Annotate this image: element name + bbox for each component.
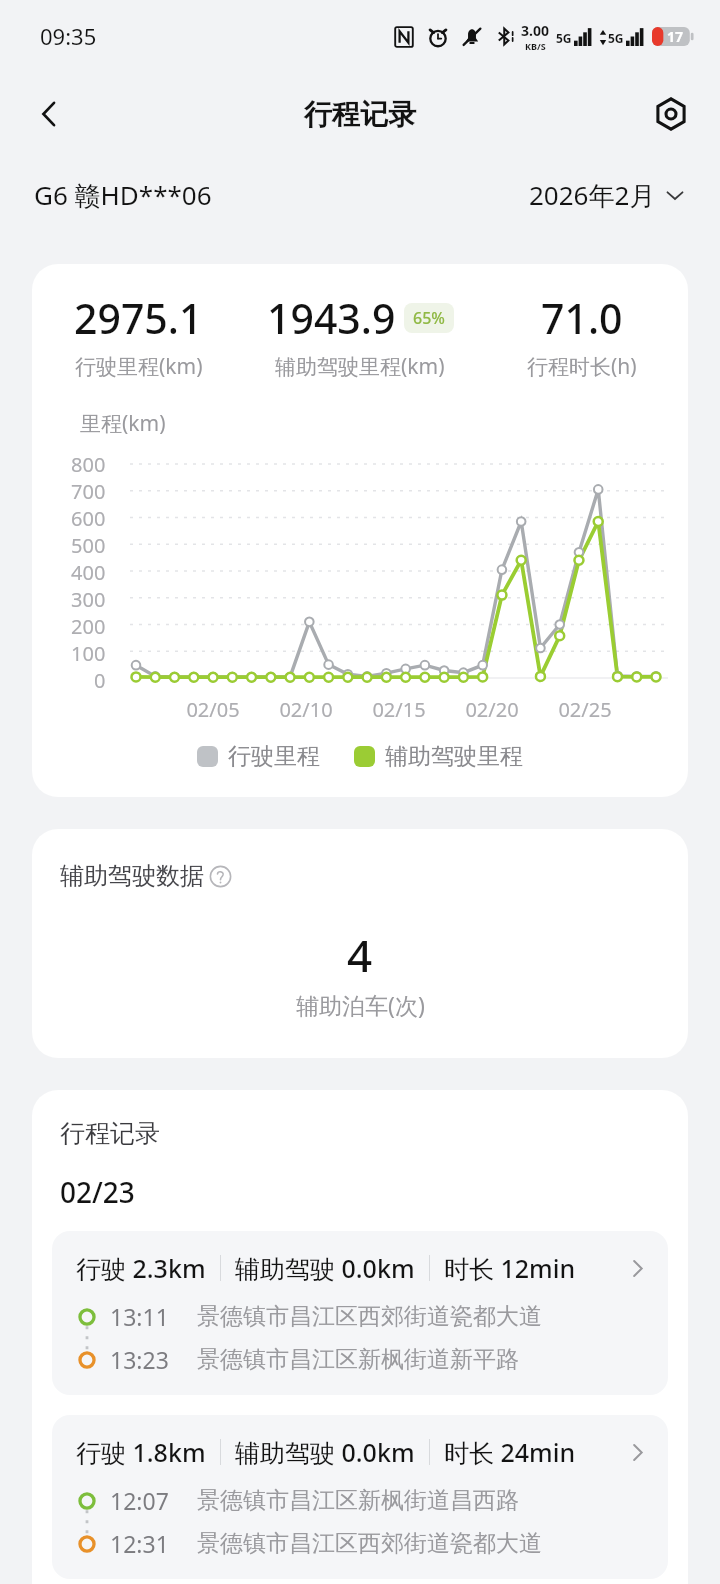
- button[interactable]: 行驶 1.8km: [52, 1415, 668, 1579]
- staticText: 景德镇市昌江区新枫街道昌西路: [197, 1486, 519, 1515]
- staticText: 2026年2月: [529, 177, 656, 213]
- staticText: 700: [71, 478, 106, 505]
- staticText: 800: [71, 451, 106, 478]
- staticText: 65%: [413, 307, 445, 329]
- staticText: 09:35: [40, 21, 97, 51]
- staticText: 02/23: [60, 1173, 135, 1211]
- staticText: 辅助驾驶里程: [385, 742, 523, 771]
- staticText: 行驶里程(km): [75, 352, 203, 381]
- staticText: 13:23: [110, 1344, 169, 1375]
- staticText: 71.0: [541, 290, 623, 346]
- staticText: 景德镇市昌江区新枫街道新平路: [197, 1345, 519, 1374]
- staticText: 景德镇市昌江区西郊街道瓷都大道: [197, 1302, 542, 1331]
- staticText: 行程记录: [60, 1118, 160, 1149]
- staticText: 3.00: [521, 21, 549, 40]
- staticText: 02/25: [546, 696, 624, 723]
- staticText: 500: [71, 532, 106, 559]
- staticText: 时长 24min: [444, 1435, 576, 1469]
- staticText: 100: [71, 640, 106, 667]
- staticText: 2975.1: [74, 290, 203, 346]
- staticText: 02/05: [174, 696, 252, 723]
- button[interactable]: Settings: [642, 85, 700, 143]
- staticText: 5G: [608, 30, 624, 46]
- staticText: 里程(km): [80, 409, 166, 438]
- staticText: 时长 12min: [444, 1251, 576, 1285]
- button[interactable]: 2026年2月: [529, 177, 686, 213]
- staticText: 行驶里程: [228, 742, 320, 771]
- staticText: 12:07: [110, 1485, 169, 1516]
- staticText: 5G: [556, 30, 572, 46]
- staticText: 02/10: [267, 696, 345, 723]
- staticText: 行驶 2.3km: [76, 1251, 206, 1285]
- staticText: 辅助驾驶数据: [60, 861, 204, 891]
- staticText: 02/20: [453, 696, 531, 723]
- staticText: 12:31: [110, 1528, 169, 1559]
- button[interactable]: Help: [209, 865, 232, 888]
- staticText: 辅助驾驶里程(km): [275, 352, 445, 381]
- staticText: 4: [347, 925, 373, 985]
- staticText: KB/S: [525, 40, 546, 52]
- staticText: 景德镇市昌江区西郊街道瓷都大道: [197, 1529, 542, 1558]
- staticText: 辅助泊车(次): [296, 989, 425, 1020]
- button[interactable]: Back: [20, 85, 78, 143]
- staticText: 02/15: [360, 696, 438, 723]
- staticText: 辅助驾驶 0.0km: [235, 1435, 415, 1469]
- staticText: 行程时长(h): [527, 352, 637, 381]
- staticText: 600: [71, 505, 106, 532]
- staticText: 200: [71, 613, 106, 640]
- staticText: 行驶 1.8km: [76, 1435, 206, 1469]
- staticText: 行程记录: [304, 97, 416, 132]
- staticText: 辅助驾驶 0.0km: [235, 1251, 415, 1285]
- staticText: 1943.9: [267, 290, 396, 346]
- staticText: 400: [71, 559, 106, 586]
- staticText: 17: [667, 27, 684, 46]
- staticText: 13:11: [110, 1301, 169, 1332]
- staticText: G6 赣HD***06: [34, 177, 212, 213]
- staticText: 0: [94, 667, 106, 691]
- button[interactable]: 行驶 2.3km: [52, 1231, 668, 1395]
- staticText: 300: [71, 586, 106, 613]
